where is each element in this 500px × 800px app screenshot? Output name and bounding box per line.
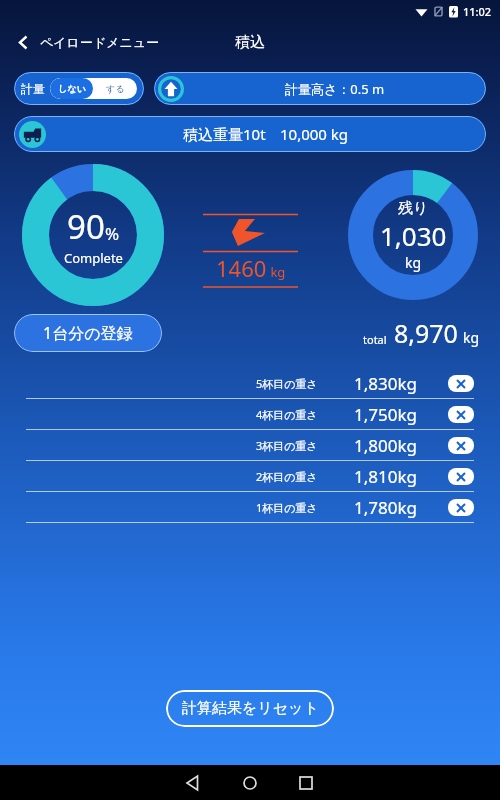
- button[interactable]: Delete 3杯目の重さ: [448, 437, 474, 454]
- staticText: 90: [67, 204, 105, 249]
- button[interactable]: Delete 1杯目の重さ: [448, 499, 474, 516]
- button[interactable]: 計量高さ：0.5 m: [154, 72, 486, 105]
- button[interactable]: Home: [222, 765, 278, 800]
- button[interactable]: 計算結果をリセット: [166, 690, 334, 727]
- staticText: 1杯目の重さ: [256, 500, 318, 515]
- button[interactable]: Delete 5杯目の重さ: [448, 375, 474, 392]
- staticText: 積込重量10t: [183, 124, 266, 144]
- button[interactable]: Back: [12, 28, 164, 56]
- staticText: 積込: [235, 33, 265, 52]
- button[interactable]: 積込重量10t: [14, 116, 486, 152]
- staticText: 1,810kg: [354, 465, 417, 488]
- staticText: 11:02: [463, 4, 492, 19]
- staticText: 10,000 kg: [280, 124, 349, 144]
- staticText: 1台分の登録: [43, 322, 133, 344]
- staticText: 5杯目の重さ: [256, 376, 318, 391]
- staticText: 1,830kg: [354, 372, 417, 395]
- button[interactable]: 計量: [14, 72, 144, 105]
- staticText: %: [105, 222, 120, 245]
- staticText: する: [106, 83, 125, 94]
- staticText: 1,800kg: [354, 434, 417, 457]
- staticText: 計算結果をリセット: [182, 699, 319, 718]
- button[interactable]: 5杯目の重さ: [26, 368, 474, 398]
- staticText: kg: [463, 328, 480, 347]
- staticText: 残り: [398, 199, 429, 218]
- button[interactable]: 1杯目の重さ: [26, 492, 474, 522]
- staticText: 1,780kg: [354, 496, 417, 519]
- button[interactable]: 1台分の登録: [14, 314, 162, 352]
- staticText: 1,750kg: [354, 403, 417, 426]
- staticText: 計量: [21, 81, 45, 96]
- button[interactable]: しない: [50, 78, 93, 99]
- staticText: 8,970: [394, 316, 458, 350]
- staticText: Complete: [64, 249, 123, 267]
- button[interactable]: 2杯目の重さ: [26, 461, 474, 491]
- button[interactable]: Delete 2杯目の重さ: [448, 468, 474, 485]
- staticText: total: [363, 332, 387, 347]
- staticText: 1460: [216, 253, 267, 283]
- staticText: しない: [58, 83, 86, 94]
- staticText: 4杯目の重さ: [256, 407, 318, 422]
- staticText: 3杯目の重さ: [256, 438, 318, 453]
- staticText: 2杯目の重さ: [256, 469, 318, 484]
- staticText: 1,030: [380, 218, 447, 253]
- button[interactable]: する: [93, 78, 137, 99]
- other: Back: [16, 35, 31, 50]
- button[interactable]: Back: [166, 765, 222, 800]
- button[interactable]: 3杯目の重さ: [26, 430, 474, 460]
- staticText: kg: [405, 253, 422, 272]
- button[interactable]: Recent apps: [278, 765, 334, 800]
- button[interactable]: 4杯目の重さ: [26, 399, 474, 429]
- staticText: ペイロードメニュー: [40, 34, 160, 50]
- staticText: kg: [267, 263, 286, 281]
- button[interactable]: Delete 4杯目の重さ: [448, 406, 474, 423]
- staticText: 計量高さ：0.5 m: [285, 80, 385, 98]
